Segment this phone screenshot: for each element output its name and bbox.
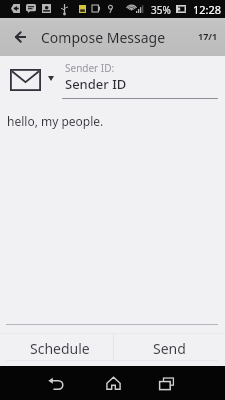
button[interactable]: Back	[36, 366, 76, 400]
staticText: Sender ID:	[65, 61, 115, 75]
staticText: Compose Message	[41, 28, 166, 47]
button[interactable]: Home	[93, 366, 133, 400]
button[interactable]: Send	[114, 333, 225, 362]
staticText: 12:28	[193, 2, 222, 17]
button[interactable]: Recent apps	[147, 366, 187, 400]
staticText: 35%	[151, 3, 171, 17]
button[interactable]: hello, my people.	[7, 113, 104, 129]
button[interactable]: Back	[9, 18, 32, 56]
staticText: Schedule	[30, 339, 90, 358]
button[interactable]: Schedule	[0, 333, 113, 362]
staticText: 17/1	[198, 30, 218, 42]
button[interactable]: Message type	[9, 64, 55, 96]
staticText: Send	[153, 339, 186, 358]
staticText: Sender ID	[65, 75, 127, 93]
